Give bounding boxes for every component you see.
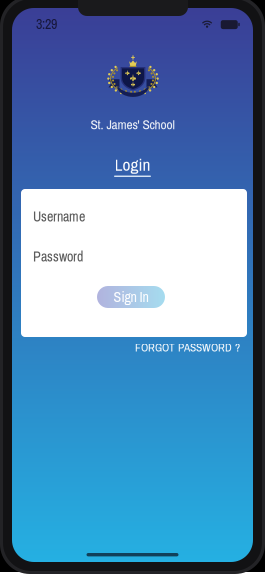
button[interactable]: FORGOT PASSWORD ? [135,342,240,353]
staticText: St. James' School [90,115,174,133]
staticText: Sign In [113,288,148,306]
staticText: Password [33,247,83,266]
staticText: 3:29 [36,15,57,33]
staticText: Username [33,207,85,226]
staticText: Login [114,153,150,176]
staticText: FORGOT PASSWORD ? [135,340,240,355]
button[interactable]: Sign In [97,286,165,308]
